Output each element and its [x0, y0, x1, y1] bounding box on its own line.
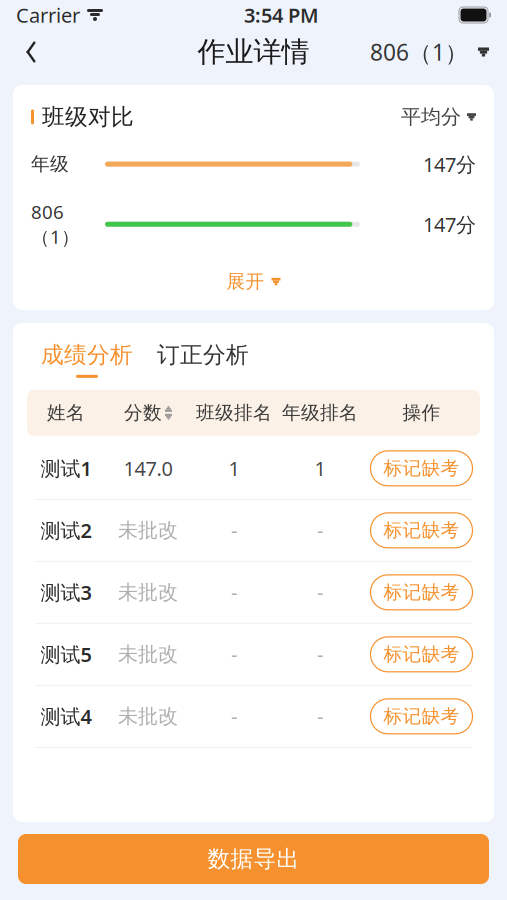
button[interactable]: 平均分	[401, 105, 476, 129]
staticText: -	[231, 517, 237, 544]
staticText: -	[317, 517, 323, 544]
staticText: 147.0	[123, 455, 172, 482]
staticText: 年级	[31, 153, 69, 176]
staticText: 未批改	[118, 580, 178, 605]
staticText: 147分	[423, 151, 476, 177]
staticText: Carrier	[16, 2, 80, 28]
staticText: 年级排名	[282, 401, 358, 424]
staticText: 测试2	[40, 517, 91, 544]
staticText: 数据导出	[207, 845, 299, 873]
staticText: 测试4	[40, 703, 91, 730]
button[interactable]: 标记缺考	[370, 451, 472, 486]
staticText: 3:54 PM	[244, 2, 319, 28]
staticText: -	[317, 703, 323, 730]
button[interactable]: 标记缺考	[370, 699, 472, 734]
button[interactable]: 标记缺考	[370, 637, 472, 672]
staticText: 展开	[226, 270, 264, 293]
staticText: 成绩分析	[41, 341, 133, 369]
staticText: 测试3	[40, 579, 91, 606]
staticText: -	[231, 641, 237, 668]
staticText: 分数	[124, 401, 162, 424]
button[interactable]: 成绩分析	[41, 341, 133, 378]
staticText: 未批改	[118, 704, 178, 729]
staticText: 标记缺考	[383, 581, 459, 604]
staticText: 班级排名	[196, 401, 272, 424]
button[interactable]: 订正分析	[133, 341, 249, 378]
button[interactable]: 返回	[8, 30, 54, 74]
staticText: -	[317, 579, 323, 606]
button[interactable]: 数据导出	[18, 834, 489, 884]
staticText: 测试5	[40, 641, 91, 668]
staticText: 订正分析	[157, 341, 249, 369]
staticText: 平均分	[401, 105, 461, 129]
staticText: 806（1）	[370, 37, 468, 67]
staticText: 操作	[402, 401, 440, 424]
staticText: -	[317, 641, 323, 668]
staticText: 标记缺考	[383, 519, 459, 542]
staticText: 标记缺考	[383, 457, 459, 480]
staticText: 标记缺考	[383, 705, 459, 728]
staticText: 未批改	[118, 518, 178, 543]
staticText: 作业详情	[197, 35, 309, 69]
staticText: 806（1）	[31, 199, 80, 249]
button[interactable]: 展开	[13, 261, 494, 302]
staticText: -	[231, 579, 237, 606]
button[interactable]: 标记缺考	[370, 575, 472, 610]
staticText: -	[231, 703, 237, 730]
staticText: 1	[314, 455, 325, 482]
staticText: 班级对比	[42, 103, 134, 131]
staticText: 姓名	[47, 401, 85, 424]
staticText: 标记缺考	[383, 643, 459, 666]
button[interactable]: 标记缺考	[370, 513, 472, 548]
staticText: 1	[228, 455, 239, 482]
staticText: 未批改	[118, 642, 178, 667]
staticText: 147分	[423, 211, 476, 238]
button[interactable]: 806（1）	[360, 30, 499, 74]
staticText: 测试1	[40, 455, 91, 482]
